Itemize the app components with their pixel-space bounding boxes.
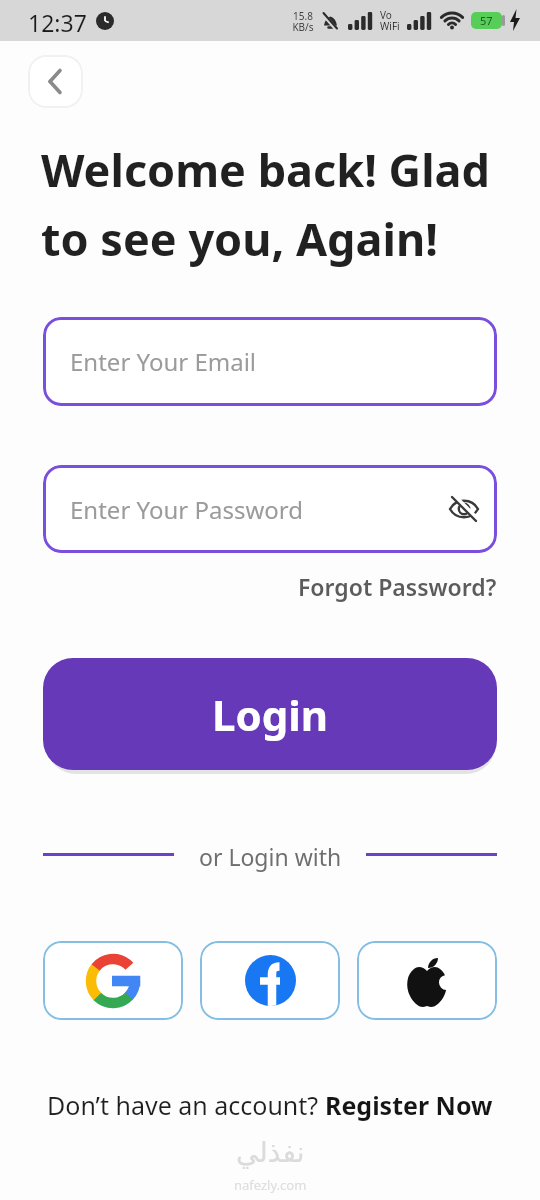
staticText: Forgot Password?: [298, 571, 497, 602]
staticText: Enter Your Password: [70, 493, 303, 526]
button[interactable]: Enter Your Password: [43, 465, 497, 553]
staticText: Don’t have an account?: [47, 1088, 325, 1122]
staticText: Enter Your Email: [70, 345, 257, 378]
button[interactable]: Enter Your Email: [43, 317, 497, 406]
button[interactable]: [448, 493, 480, 525]
staticText: or Login with: [199, 841, 342, 872]
staticText: Login: [212, 686, 329, 743]
button[interactable]: Forgot Password?: [43, 571, 497, 602]
staticText: 12:37: [28, 7, 87, 38]
button[interactable]: Login: [43, 658, 497, 770]
staticText: Vo WiFi: [380, 8, 400, 33]
button[interactable]: [28, 55, 83, 108]
staticText: نفذلي: [236, 1136, 305, 1169]
staticText: nafezly.com: [234, 1176, 307, 1194]
button[interactable]: [43, 941, 183, 1020]
staticText: Register Now: [325, 1088, 493, 1122]
button[interactable]: [357, 941, 497, 1020]
button[interactable]: Don’t have an account?: [0, 1088, 540, 1122]
staticText: 57: [480, 13, 493, 28]
staticText: Welcome back! Glad to see you, Again!: [41, 139, 490, 269]
button[interactable]: [200, 941, 340, 1020]
staticText: 15.8 KB/s: [292, 9, 314, 34]
